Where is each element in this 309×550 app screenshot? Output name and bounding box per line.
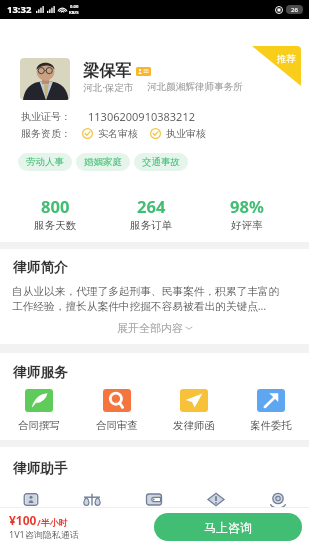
button[interactable]: 法律法规 (61, 491, 123, 507)
staticText: 河北颜湘辉律师事务所 (147, 81, 243, 93)
staticText: 合同审查 (96, 419, 138, 432)
staticText: 律师服务 (13, 364, 68, 381)
staticText: 马上咨询 (204, 520, 252, 535)
button[interactable]: 合同范本 (0, 491, 61, 507)
staticText: 实名审核 (98, 127, 138, 140)
staticText: 服务订单 (130, 219, 172, 232)
staticText: 律师简介 (13, 259, 68, 276)
staticText: 服务资质： (21, 127, 71, 140)
button[interactable]: 婚姻家庭 (84, 153, 122, 171)
staticText: 好评率 (231, 219, 263, 232)
staticText: 展开全部内容 (117, 321, 183, 335)
staticText: 发律师函 (173, 419, 215, 432)
staticText: 0.00 (70, 4, 79, 10)
button[interactable]: 案件委托 (232, 389, 309, 432)
staticText: 264 (137, 195, 166, 217)
staticText: 1V1咨询隐私通话 (9, 528, 79, 540)
staticText: 推荐 (277, 53, 296, 65)
button[interactable]: 马上咨询 (154, 513, 302, 541)
staticText: 26 (291, 6, 298, 14)
staticText: 执业审核 (166, 127, 206, 140)
staticText: ¥100 (9, 512, 37, 528)
staticText: 服务天数 (34, 219, 76, 232)
staticText: 婚姻家庭 (84, 156, 122, 168)
staticText: 自从业以来，代理了多起刑事、民事案件，积累了丰富的工作经验，擅长从案件中挖掘不容… (12, 285, 284, 313)
button[interactable]: 合同审查 (78, 389, 155, 432)
button[interactable]: 案例查询 (185, 491, 247, 507)
staticText: 800 (41, 195, 70, 217)
staticText: /半小时 (37, 516, 68, 528)
staticText: 河北·保定市 (83, 81, 134, 94)
staticText: KB/S (69, 10, 79, 16)
staticText: 合同撰写 (18, 419, 60, 432)
button[interactable]: 合同撰写 (0, 389, 78, 432)
button[interactable]: 交通事故 (142, 153, 180, 171)
staticText: 11306200910383212 (88, 109, 195, 124)
staticText: 律师助手 (13, 460, 68, 477)
staticText: 执业证号： (21, 110, 71, 123)
button[interactable]: 展开全部内容 (0, 320, 309, 336)
staticText: 98% (230, 195, 264, 217)
staticText: 13:32 (7, 3, 32, 16)
button[interactable]: 劳动人事 (26, 153, 64, 171)
button[interactable]: 发律师函 (155, 389, 232, 432)
staticText: 梁保军 (83, 61, 131, 81)
button[interactable]: 法律咨询 (247, 491, 309, 507)
staticText: 案件委托 (250, 419, 292, 432)
button[interactable]: 律师名片 (123, 491, 185, 507)
staticText: 劳动人事 (26, 156, 64, 168)
staticText: 交通事故 (142, 156, 180, 168)
